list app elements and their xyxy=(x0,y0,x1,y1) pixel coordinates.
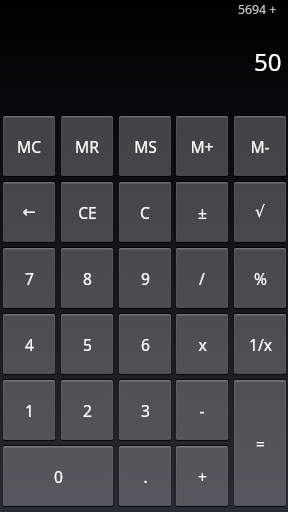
staticText: CE xyxy=(78,202,97,223)
staticText: 3 xyxy=(141,400,150,421)
button[interactable]: 1 xyxy=(3,380,55,440)
staticText: 1 xyxy=(25,400,34,421)
button[interactable]: ± xyxy=(176,182,228,242)
staticText: 50 xyxy=(254,45,282,78)
button[interactable]: + xyxy=(176,446,228,506)
staticText: M- xyxy=(250,136,270,157)
button[interactable]: CE xyxy=(61,182,113,242)
button[interactable]: MS xyxy=(119,116,171,176)
staticText: 7 xyxy=(25,268,34,289)
button[interactable]: Backspace xyxy=(3,182,55,242)
button[interactable]: 2 xyxy=(61,380,113,440)
button[interactable]: M- xyxy=(234,116,286,176)
staticText: + xyxy=(198,466,207,487)
button[interactable]: C xyxy=(119,182,171,242)
staticText: MR xyxy=(75,136,99,157)
button[interactable]: 1/x xyxy=(234,314,286,374)
button[interactable]: 9 xyxy=(119,248,171,308)
button[interactable]: / xyxy=(176,248,228,308)
staticText: 0 xyxy=(54,466,63,487)
button[interactable]: . xyxy=(119,446,171,506)
staticText: MS xyxy=(134,136,157,157)
button[interactable]: 3 xyxy=(119,380,171,440)
button[interactable]: x xyxy=(176,314,228,374)
staticText: - xyxy=(199,400,205,421)
staticText: 9 xyxy=(141,268,150,289)
button[interactable]: 6 xyxy=(119,314,171,374)
staticText: MC xyxy=(17,136,41,157)
button[interactable]: 4 xyxy=(3,314,55,374)
staticText: M+ xyxy=(190,136,214,157)
button[interactable]: 8 xyxy=(61,248,113,308)
staticText: √ xyxy=(255,203,265,221)
staticText: / xyxy=(199,268,205,289)
staticText: x xyxy=(198,334,207,355)
staticText: = xyxy=(256,433,265,454)
button[interactable]: MR xyxy=(61,116,113,176)
button[interactable]: % xyxy=(234,248,286,308)
staticText: 8 xyxy=(83,268,92,289)
button[interactable]: - xyxy=(176,380,228,440)
button[interactable]: M+ xyxy=(176,116,228,176)
button[interactable]: 0 xyxy=(3,446,113,506)
staticText: 1/x xyxy=(249,334,272,355)
staticText: ← xyxy=(22,203,36,221)
staticText: ± xyxy=(198,202,207,223)
staticText: % xyxy=(254,268,267,289)
staticText: 6 xyxy=(141,334,150,355)
staticText: 5 xyxy=(83,334,92,355)
button[interactable]: MC xyxy=(3,116,55,176)
button[interactable]: 7 xyxy=(3,248,55,308)
staticText: 4 xyxy=(25,334,34,355)
staticText: 5694 + xyxy=(238,1,277,18)
staticText: 2 xyxy=(83,400,92,421)
staticText: C xyxy=(140,202,150,223)
staticText: . xyxy=(143,466,148,487)
button[interactable]: = xyxy=(234,380,286,506)
button[interactable]: √ xyxy=(234,182,286,242)
button[interactable]: 5 xyxy=(61,314,113,374)
